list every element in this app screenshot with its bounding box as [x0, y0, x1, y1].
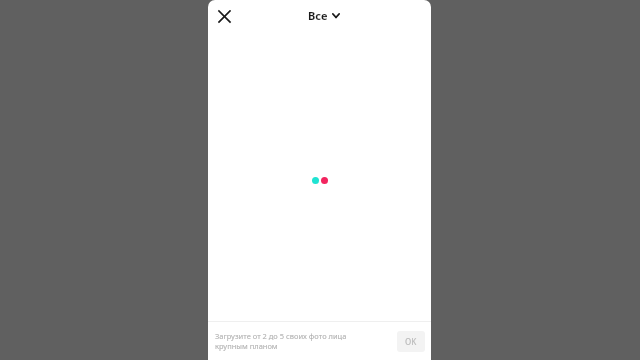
staticText: Загрузите от 2 до 5 своих фото лица круп…: [215, 331, 347, 351]
button[interactable]: OK: [397, 331, 425, 352]
button[interactable]: Close: [210, 2, 238, 30]
staticText: OK: [405, 336, 417, 347]
button[interactable]: Все: [304, 5, 344, 26]
staticText: Все: [308, 8, 328, 23]
